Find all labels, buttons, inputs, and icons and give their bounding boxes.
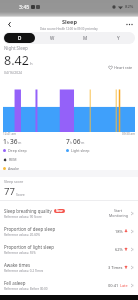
staticText: 3 Times xyxy=(108,265,123,270)
staticText: 7 xyxy=(66,137,70,146)
staticText: Reference value≥ 55% xyxy=(4,251,36,255)
staticText: REM xyxy=(9,157,17,162)
staticText: Reference value≥ 20-60% xyxy=(4,233,41,237)
staticText: Reference value≥ Before 00:00 xyxy=(4,287,48,291)
staticText: Fell asleep xyxy=(4,280,26,286)
staticText: h xyxy=(7,140,10,145)
staticText: Proportion of light sleep xyxy=(4,244,55,250)
staticText: 62% xyxy=(115,247,123,252)
staticText: 18% xyxy=(115,229,123,234)
staticText: 1 xyxy=(3,137,7,146)
staticText: Data source:Health 12:00 to 09:30 yester… xyxy=(40,27,98,31)
staticText: m xyxy=(18,140,22,145)
staticText: 04/16/2024 xyxy=(4,70,23,75)
staticText: Heart rate xyxy=(114,65,133,70)
staticText: Proportion of deep sleep xyxy=(4,226,56,232)
staticText: Deep sleep xyxy=(8,148,27,153)
staticText: 8.42 xyxy=(4,52,29,69)
staticText: M xyxy=(83,35,88,41)
staticText: Awake xyxy=(8,166,20,171)
staticText: Reference value≥ 0-2 Times xyxy=(4,269,44,273)
button[interactable]: Proportion of deep sleep xyxy=(0,222,138,240)
button[interactable]: Fell asleep xyxy=(0,276,138,294)
staticText: h xyxy=(30,61,33,67)
staticText: Night Sleep xyxy=(4,45,28,51)
button[interactable]: Heart rate xyxy=(106,64,135,71)
staticText: m xyxy=(81,140,85,145)
staticText: 82% xyxy=(125,4,134,10)
staticText: Reference value≥ 90 Score xyxy=(4,215,42,219)
staticText: Awake times xyxy=(4,262,31,268)
staticText: Sleep breathing quality xyxy=(4,208,52,214)
staticText: Late xyxy=(120,283,128,288)
staticText: h xyxy=(70,140,73,145)
button[interactable]: Awake times xyxy=(0,258,138,276)
staticText: Sleep score xyxy=(4,179,24,184)
staticText: 12:41 am xyxy=(3,132,16,136)
staticText: 77 xyxy=(4,185,15,198)
staticText: New xyxy=(56,209,63,213)
staticText: 00:41 xyxy=(108,283,119,288)
staticText: 3:45 xyxy=(19,3,30,10)
button[interactable]: Proportion of light sleep xyxy=(0,240,138,258)
staticText: Sleep xyxy=(62,18,77,26)
staticText: Monitoring xyxy=(109,213,128,218)
button[interactable]: More options xyxy=(124,19,135,30)
button[interactable]: Back xyxy=(4,19,15,30)
staticText: 09:30 am xyxy=(122,132,135,136)
button[interactable]: Y xyxy=(103,33,134,43)
button[interactable]: Sleep breathing quality xyxy=(0,204,138,222)
staticText: D xyxy=(18,35,22,41)
staticText: Y xyxy=(117,35,120,41)
button[interactable]: M xyxy=(70,33,101,43)
staticText: Start xyxy=(114,208,123,213)
button[interactable]: D xyxy=(4,33,35,43)
staticText: Score xyxy=(16,192,25,197)
button[interactable]: W xyxy=(37,33,68,43)
staticText: W xyxy=(50,35,55,41)
staticText: 06 xyxy=(73,137,81,146)
staticText: 36 xyxy=(10,137,18,146)
staticText: Light sleep xyxy=(71,148,90,153)
